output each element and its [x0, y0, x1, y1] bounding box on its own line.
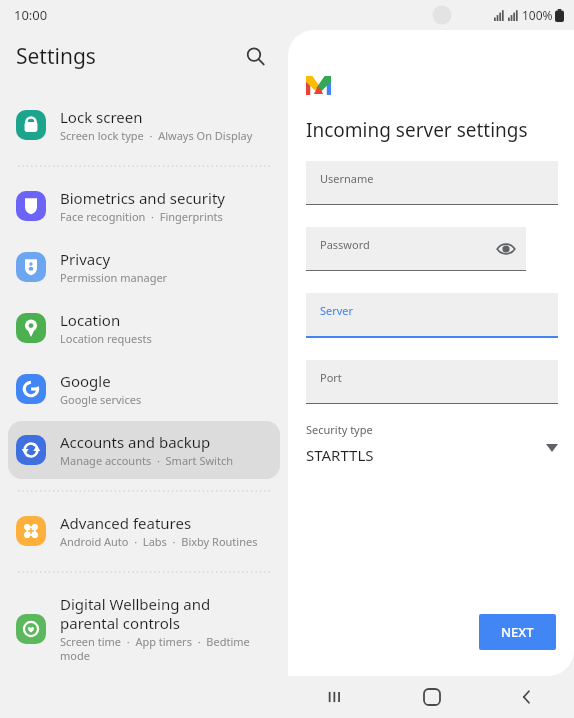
button[interactable]: Server [306, 293, 558, 338]
other: Show password [496, 239, 516, 259]
staticText: 10:00 [14, 6, 48, 24]
staticText: Location requests [60, 331, 152, 346]
staticText: STARTTLS [306, 445, 374, 465]
button[interactable]: Home [384, 676, 479, 718]
staticText: Advanced features [60, 513, 192, 533]
staticText: Face recognition · Fingerprints [60, 209, 223, 224]
staticText: Settings [16, 42, 96, 71]
button[interactable]: Recents [288, 676, 384, 718]
button[interactable]: Lock screen [8, 96, 280, 154]
button[interactable]: Search [238, 39, 272, 73]
button[interactable]: Biometrics and security [8, 177, 280, 235]
staticText: Server [320, 303, 354, 318]
button[interactable]: Accounts and backup [8, 421, 280, 479]
button[interactable]: Back [479, 676, 574, 718]
staticText: Permission manager [60, 270, 168, 285]
staticText: Password [320, 237, 370, 252]
staticText: Username [320, 171, 374, 186]
staticText: Incoming server settings [306, 117, 528, 143]
button[interactable]: Password [306, 227, 526, 271]
button[interactable]: Security type [306, 422, 558, 465]
button[interactable]: Port [306, 360, 558, 404]
staticText: Security type [306, 422, 373, 437]
button[interactable]: NEXT [479, 614, 556, 650]
staticText: Biometrics and security [60, 188, 226, 208]
staticText: Port [320, 370, 342, 385]
button[interactable]: Location [8, 299, 280, 357]
staticText: Google [60, 371, 111, 391]
staticText: Location [60, 310, 121, 330]
staticText: Screen lock type · Always On Display [60, 128, 253, 143]
staticText: Lock screen [60, 107, 143, 127]
button[interactable]: Digital Wellbeing and parental controls [8, 583, 280, 674]
button[interactable]: Google [8, 360, 280, 418]
button[interactable]: Privacy [8, 238, 280, 296]
staticText: Google services [60, 392, 142, 407]
staticText: 100% [522, 7, 553, 23]
staticText: Android Auto · Labs · Bixby Routines [60, 534, 258, 549]
button[interactable]: Advanced features [8, 502, 280, 560]
staticText: NEXT [501, 623, 534, 641]
staticText: Screen time · App timers · Bedtime mode [60, 634, 270, 663]
staticText: Manage accounts · Smart Switch [60, 453, 233, 468]
staticText: Accounts and backup [60, 432, 211, 452]
staticText: Privacy [60, 249, 111, 269]
staticText: Digital Wellbeing and parental controls [60, 594, 270, 633]
button[interactable]: Username [306, 161, 558, 205]
